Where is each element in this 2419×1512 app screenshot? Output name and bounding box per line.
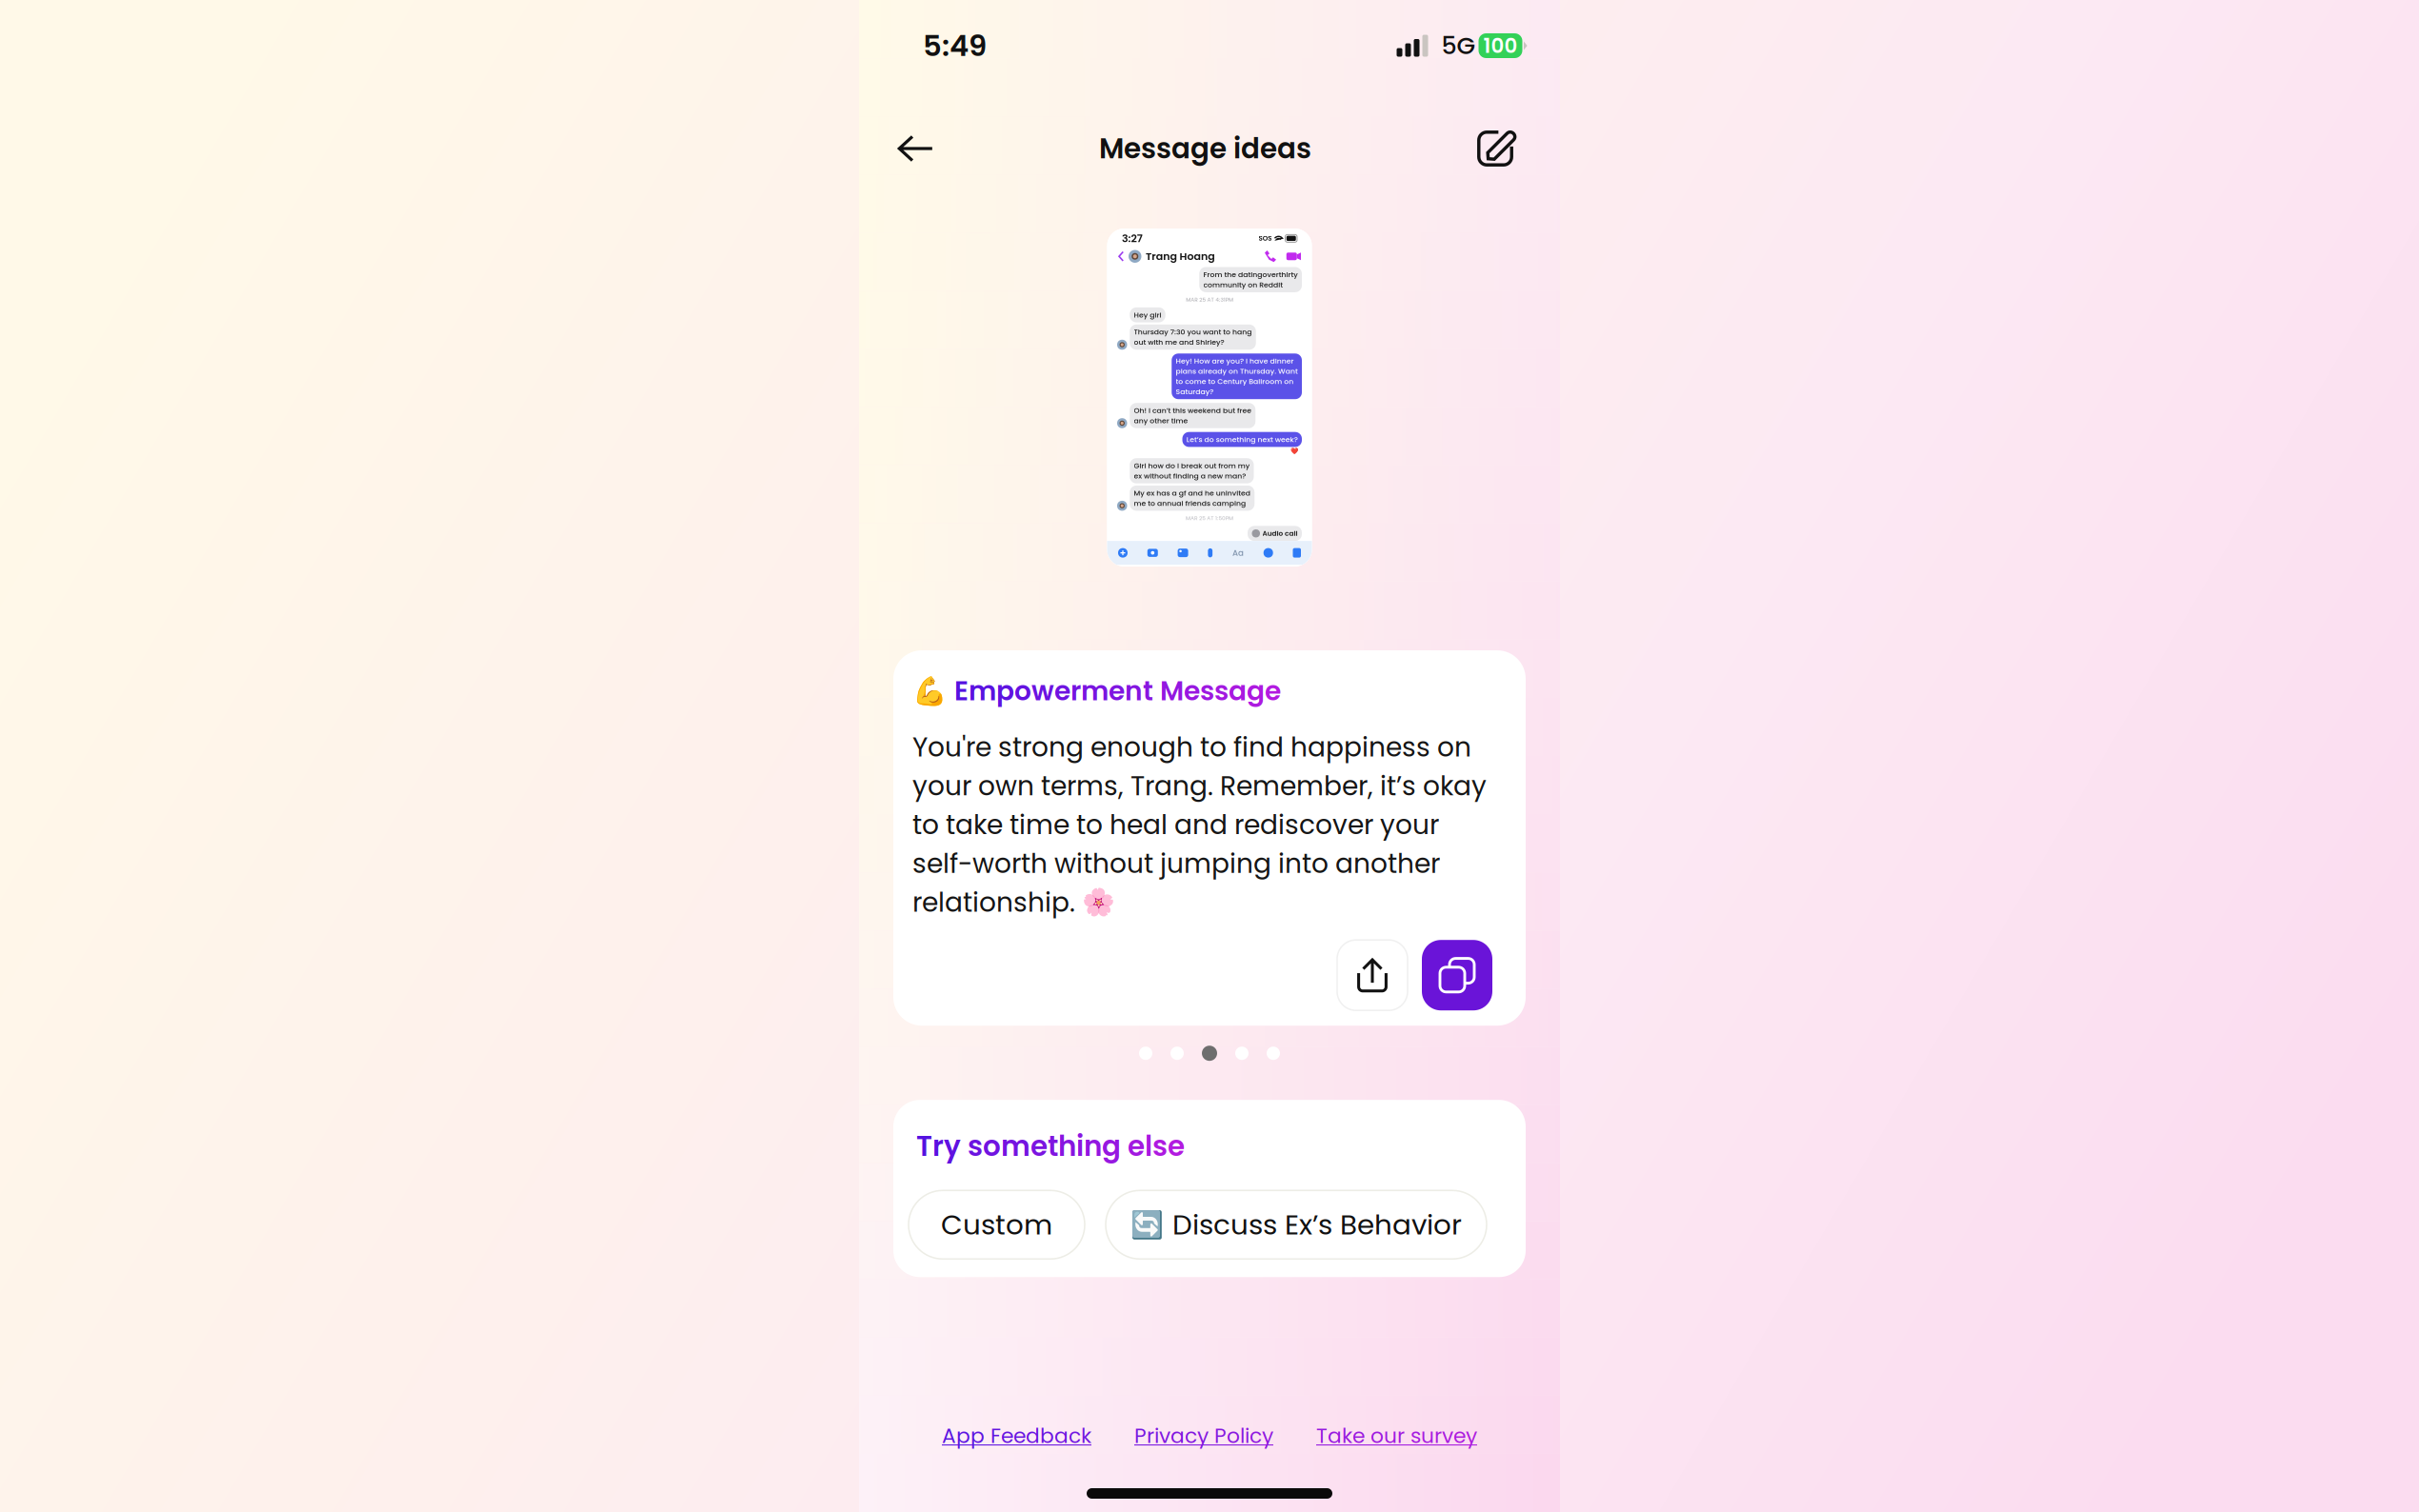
staticText: v xyxy=(1442,1421,1453,1450)
staticText: e xyxy=(1265,672,1281,710)
staticText: g xyxy=(1247,672,1265,710)
staticText: Hey girl xyxy=(1214,553,1324,594)
staticText: e xyxy=(1030,1127,1048,1166)
staticText: b xyxy=(1040,1421,1054,1450)
staticText: r xyxy=(1070,672,1081,710)
staticText: y xyxy=(1262,1421,1273,1450)
staticText: 5G xyxy=(1428,29,1476,63)
staticText: p xyxy=(970,1421,985,1450)
staticText: M xyxy=(1160,672,1184,710)
staticText xyxy=(1365,1421,1370,1450)
staticText: Message ideas xyxy=(1099,129,1311,168)
staticText: F xyxy=(990,1421,1001,1450)
staticText xyxy=(985,1421,990,1450)
staticText: d xyxy=(1026,1421,1040,1450)
staticText: A xyxy=(942,1421,956,1450)
staticText: e xyxy=(1168,1127,1185,1166)
staticText: 3:27 xyxy=(1166,239,1249,297)
staticText: a xyxy=(1229,672,1247,710)
staticText: t xyxy=(1048,1127,1058,1166)
staticText: c xyxy=(1249,1421,1262,1450)
staticText: Girl how do I break out from my ex witho… xyxy=(1214,1157,1678,1239)
staticText: e xyxy=(1184,672,1200,710)
staticText: Oh! I can’t this weekend but free any ot… xyxy=(1214,936,1684,1018)
staticText: e xyxy=(1128,1127,1145,1166)
staticText: o xyxy=(1370,1421,1384,1450)
button[interactable]: Copy xyxy=(1422,940,1492,1010)
staticText: i xyxy=(1245,1421,1249,1450)
button[interactable]: Share xyxy=(1337,940,1408,1010)
staticText: e xyxy=(1054,672,1070,710)
staticText: e xyxy=(1453,1421,1466,1450)
staticText: i xyxy=(1154,1421,1159,1450)
button[interactable]: P xyxy=(1134,1421,1273,1450)
staticText: P xyxy=(1134,1421,1147,1450)
staticText: s xyxy=(1214,672,1229,710)
staticText: k xyxy=(1342,1421,1352,1450)
button[interactable]: Back xyxy=(879,112,951,185)
button[interactable]: 🔄 xyxy=(1106,1190,1487,1259)
staticText: a xyxy=(1170,1421,1185,1450)
staticText: p xyxy=(956,1421,970,1450)
staticText: s xyxy=(968,1127,983,1166)
staticText: t xyxy=(1143,672,1153,710)
staticText: MAR 25 AT 1:50PM xyxy=(1421,1373,1612,1403)
staticText: e xyxy=(1352,1421,1365,1450)
staticText: h xyxy=(1058,1127,1076,1166)
staticText: o xyxy=(983,1127,1001,1166)
staticText: n xyxy=(1084,1127,1102,1166)
staticText: u xyxy=(1384,1421,1397,1450)
staticText: i xyxy=(1076,1127,1084,1166)
button[interactable]: A xyxy=(942,1421,1091,1450)
staticText: Trang Hoang xyxy=(1261,310,1539,369)
button[interactable]: Custom xyxy=(909,1190,1085,1259)
staticText: e xyxy=(1109,672,1125,710)
staticText: Custom xyxy=(941,1205,1052,1244)
staticText: o xyxy=(1227,1421,1240,1450)
staticText: P xyxy=(1214,1421,1227,1450)
button[interactable]: T xyxy=(1316,1421,1477,1450)
staticText: e xyxy=(1001,1421,1013,1450)
staticText: s xyxy=(1200,672,1214,710)
button[interactable]: New message xyxy=(1459,112,1531,185)
staticText: Thursday 7:30 you want to hang out with … xyxy=(1214,622,1686,704)
staticText: y xyxy=(1466,1421,1477,1450)
staticText: c xyxy=(1069,1421,1081,1450)
staticText: n xyxy=(1125,672,1143,710)
staticText: r xyxy=(932,1127,944,1166)
staticText: g xyxy=(1102,1127,1121,1166)
staticText: m xyxy=(969,672,996,710)
staticText: l xyxy=(1145,1127,1152,1166)
staticText: l xyxy=(1240,1421,1245,1450)
staticText: y xyxy=(944,1127,961,1166)
staticText: o xyxy=(1014,672,1031,710)
staticText: k xyxy=(1081,1421,1091,1450)
staticText xyxy=(1209,1421,1214,1450)
staticText: a xyxy=(1328,1421,1342,1450)
staticText: w xyxy=(1031,672,1054,710)
staticText: r xyxy=(1434,1421,1442,1450)
staticText: Hey! How are you? I have dinner plans al… xyxy=(1381,738,1870,901)
staticText xyxy=(1153,672,1160,710)
staticText: Discuss Ex’s Behavior xyxy=(1172,1205,1462,1244)
staticText: e xyxy=(1013,1421,1026,1450)
staticText: c xyxy=(1185,1421,1197,1450)
staticText xyxy=(1405,1421,1410,1450)
staticText: 5:49 xyxy=(923,25,987,66)
staticText: 🔄 xyxy=(1130,1209,1164,1240)
staticText: p xyxy=(996,672,1014,710)
staticText: r xyxy=(1147,1421,1154,1450)
staticText: m xyxy=(1081,672,1109,710)
